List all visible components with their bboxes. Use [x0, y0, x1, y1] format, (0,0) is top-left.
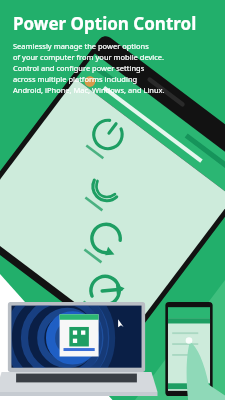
button[interactable]: Shutdown [78, 150, 118, 176]
button[interactable]: Sleep [103, 185, 143, 211]
button[interactable]: Power Option Control [13, 12, 197, 35]
staticText: Seamlessly manage the power options of y… [13, 41, 165, 95]
button[interactable]: Log off [150, 252, 190, 278]
